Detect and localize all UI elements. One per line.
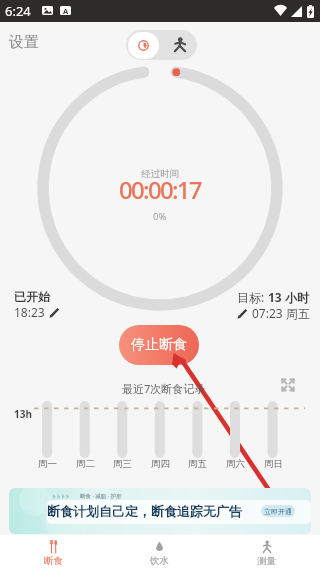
staticText: 0% [153, 210, 167, 223]
button[interactable]: 饮水 [106, 535, 213, 568]
staticText: 饮水 [150, 555, 169, 567]
staticText: 周日 [264, 458, 283, 470]
staticText: 已开始 [14, 289, 50, 304]
staticText: 周六 [226, 458, 245, 470]
staticText: 13 [268, 289, 282, 305]
button[interactable]: 测量 [213, 535, 320, 568]
button[interactable]: 断食 [0, 535, 106, 568]
staticText: 断食 [44, 555, 63, 567]
button[interactable]: 已开始 [14, 289, 60, 320]
staticText: 断食计划自己定，断食追踪无广告 [47, 503, 242, 519]
staticText: 最近7次断食记录 [122, 381, 206, 396]
staticText: 目标: [237, 289, 268, 305]
staticText: 13h [14, 407, 32, 421]
staticText: 周五 [188, 458, 207, 470]
button[interactable]: 设置 [9, 33, 39, 52]
staticText: 07:23 周五 [252, 305, 310, 321]
staticText: 断食 · 减脂 · 护肝 [80, 492, 122, 500]
button[interactable]: 断食 · 减脂 · 护肝 [9, 488, 311, 534]
button[interactable]: 停止断食 [119, 325, 199, 365]
staticText: 6:24 [5, 2, 31, 20]
button[interactable]: 展开 [281, 378, 295, 392]
staticText: 周四 [151, 458, 170, 470]
button[interactable]: 断食 [128, 32, 159, 59]
staticText: 周三 [113, 458, 132, 470]
staticText: A [63, 6, 69, 15]
staticText: 经过时间 [141, 168, 179, 180]
staticText: 小时 [282, 289, 310, 305]
staticText: 周二 [76, 458, 95, 470]
staticText: 立即开通 [264, 507, 292, 516]
button[interactable]: 目标: [237, 289, 310, 321]
staticText: 周一 [38, 458, 57, 470]
staticText: 00:00:17 [119, 173, 201, 206]
staticText: 18:23 [14, 304, 45, 320]
button[interactable]: 运动 [163, 30, 197, 60]
staticText: 停止断食 [131, 336, 187, 354]
staticText: 测量 [257, 555, 276, 567]
button[interactable]: 立即开通 [261, 505, 295, 517]
